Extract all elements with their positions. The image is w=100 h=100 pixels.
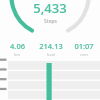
button[interactable]: 4.06 [0,41,34,56]
button[interactable]: 01:07 [67,41,100,56]
staticText: kcal [47,52,55,57]
button[interactable]: 214.13 [34,41,67,56]
staticText: 214.13 [39,41,63,51]
staticText: 01:07 [74,41,94,51]
button[interactable]: Activity chart [0,57,100,100]
staticText: km [14,52,20,57]
staticText: mm [80,52,88,57]
staticText: 5,433 [33,0,67,17]
staticText: Steps [44,18,57,25]
button[interactable]: Steps progress ring [0,0,100,40]
staticText: 4.06 [10,41,25,51]
